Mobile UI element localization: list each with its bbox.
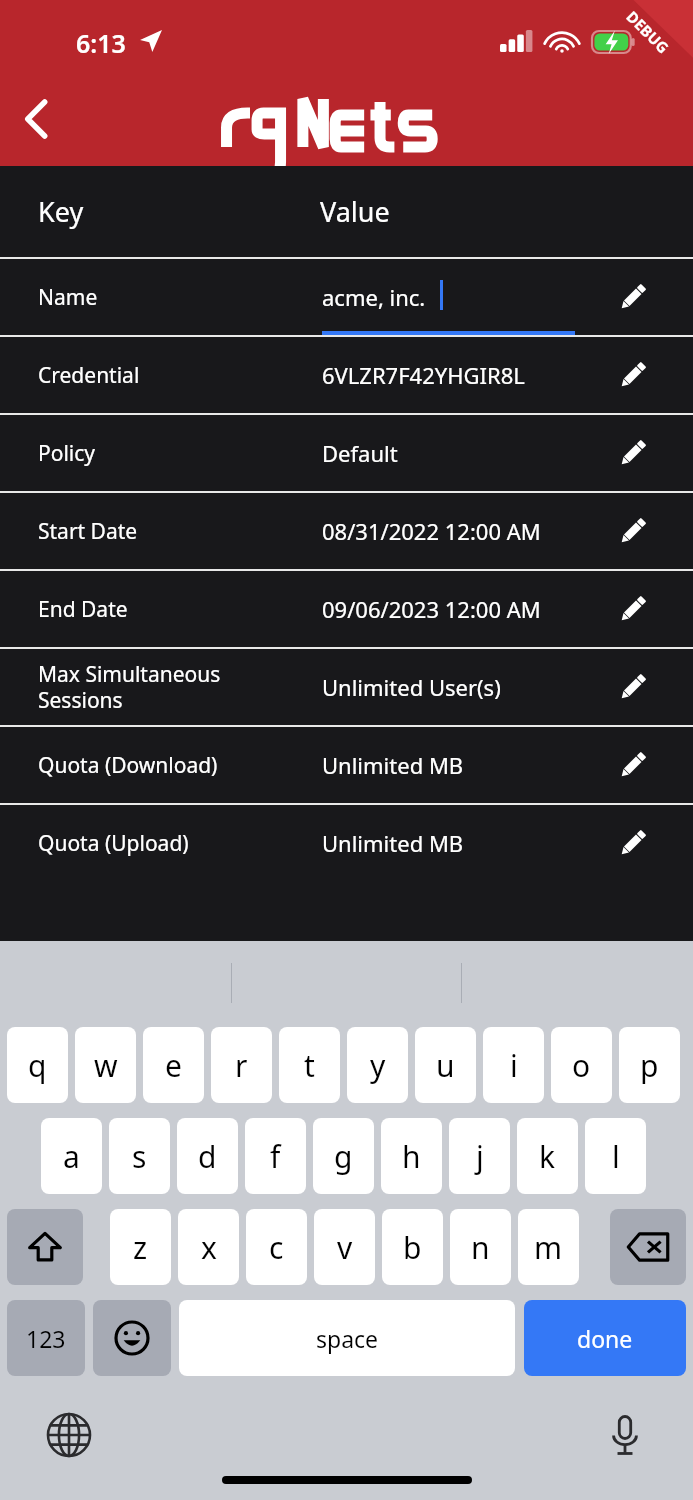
button[interactable]: i bbox=[483, 1027, 544, 1103]
button[interactable]: o bbox=[551, 1027, 612, 1103]
button[interactable]: Dictate bbox=[598, 1408, 652, 1462]
staticText: v bbox=[337, 1227, 353, 1268]
button[interactable]: q bbox=[7, 1027, 68, 1103]
staticText: z bbox=[133, 1227, 148, 1268]
staticText: r bbox=[235, 1045, 248, 1086]
button[interactable]: Quota (Download) bbox=[0, 727, 693, 803]
button[interactable]: Back bbox=[8, 90, 66, 148]
staticText: y bbox=[370, 1045, 386, 1086]
staticText: Unlimited User(s) bbox=[322, 672, 501, 702]
staticText: o bbox=[572, 1045, 591, 1086]
staticText: 6VLZR7F42YHGIR8L bbox=[322, 360, 525, 390]
staticText: f bbox=[270, 1136, 281, 1177]
staticText: d bbox=[198, 1136, 217, 1177]
staticText: p bbox=[640, 1045, 659, 1086]
staticText: Credential bbox=[38, 361, 140, 390]
button[interactable]: Edit Policy bbox=[611, 431, 655, 475]
staticText: k bbox=[539, 1136, 556, 1177]
button[interactable]: t bbox=[279, 1027, 340, 1103]
staticText: done bbox=[577, 1323, 633, 1354]
button[interactable]: j bbox=[449, 1118, 510, 1194]
button[interactable]: e bbox=[143, 1027, 204, 1103]
button[interactable]: l bbox=[585, 1118, 646, 1194]
button[interactable]: Edit Start Date bbox=[611, 509, 655, 553]
button[interactable]: done bbox=[524, 1300, 686, 1376]
staticText: a bbox=[63, 1136, 80, 1177]
staticText: c bbox=[269, 1227, 284, 1268]
staticText: Unlimited MB bbox=[322, 750, 464, 780]
staticText: b bbox=[403, 1227, 422, 1268]
button[interactable]: Name bbox=[0, 259, 693, 335]
button[interactable]: p bbox=[619, 1027, 680, 1103]
button[interactable]: n bbox=[450, 1209, 511, 1285]
staticText: Name bbox=[38, 283, 98, 312]
staticText: acme, inc. bbox=[322, 282, 426, 312]
button[interactable]: Quota (Upload) bbox=[0, 805, 693, 881]
staticText: Quota (Download) bbox=[38, 751, 218, 780]
staticText: Quota (Upload) bbox=[38, 829, 189, 858]
staticText: q bbox=[28, 1045, 47, 1086]
button[interactable]: Edit Quota (Download) bbox=[611, 743, 655, 787]
button[interactable]: End Date bbox=[0, 571, 693, 647]
button[interactable]: m bbox=[518, 1209, 579, 1285]
staticText: w bbox=[94, 1045, 118, 1086]
button[interactable]: f bbox=[245, 1118, 306, 1194]
button[interactable]: Edit Quota (Upload) bbox=[611, 821, 655, 865]
staticText: Value bbox=[320, 193, 390, 230]
button[interactable]: k bbox=[517, 1118, 578, 1194]
button[interactable]: g bbox=[313, 1118, 374, 1194]
staticText: x bbox=[201, 1227, 217, 1268]
button[interactable]: Edit End Date bbox=[611, 587, 655, 631]
button[interactable]: space bbox=[179, 1300, 515, 1376]
staticText: g bbox=[334, 1136, 353, 1177]
button[interactable]: Change keyboard bbox=[42, 1408, 96, 1462]
staticText: Key bbox=[38, 193, 84, 230]
staticText: Start Date bbox=[38, 517, 138, 546]
staticText: Policy bbox=[38, 439, 96, 468]
staticText: j bbox=[476, 1136, 484, 1177]
staticText: DEBUG bbox=[622, 6, 673, 57]
staticText: l bbox=[612, 1136, 620, 1177]
button[interactable]: Credential bbox=[0, 337, 693, 413]
staticText: 09/06/2023 12:00 AM bbox=[322, 594, 541, 624]
button[interactable]: d bbox=[177, 1118, 238, 1194]
staticText: 6:13 bbox=[76, 26, 126, 60]
staticText: u bbox=[436, 1045, 455, 1086]
staticText: Max Simultaneous Sessions bbox=[38, 660, 221, 715]
staticText: 123 bbox=[26, 1323, 66, 1354]
button[interactable]: z bbox=[110, 1209, 171, 1285]
staticText: s bbox=[132, 1136, 147, 1177]
staticText: h bbox=[402, 1136, 421, 1177]
staticText: 08/31/2022 12:00 AM bbox=[322, 516, 541, 546]
button[interactable]: Edit Name bbox=[611, 275, 655, 319]
staticText: n bbox=[471, 1227, 490, 1268]
button[interactable]: c bbox=[246, 1209, 307, 1285]
button[interactable]: w bbox=[75, 1027, 136, 1103]
button[interactable]: r bbox=[211, 1027, 272, 1103]
button[interactable]: s bbox=[109, 1118, 170, 1194]
button[interactable]: 123 bbox=[7, 1300, 85, 1376]
button[interactable]: Edit Credential bbox=[611, 353, 655, 397]
staticText: space bbox=[316, 1323, 379, 1354]
staticText: Default bbox=[322, 438, 398, 468]
button[interactable]: Policy bbox=[0, 415, 693, 491]
button[interactable]: Edit Max Simultaneous Sessions bbox=[611, 665, 655, 709]
button[interactable]: Backspace bbox=[610, 1209, 686, 1285]
button[interactable]: Start Date bbox=[0, 493, 693, 569]
button[interactable]: y bbox=[347, 1027, 408, 1103]
button[interactable]: x bbox=[178, 1209, 239, 1285]
button[interactable]: v bbox=[314, 1209, 375, 1285]
staticText: Unlimited MB bbox=[322, 828, 464, 858]
staticText: End Date bbox=[38, 595, 128, 624]
staticText: m bbox=[534, 1227, 563, 1268]
button[interactable]: a bbox=[41, 1118, 102, 1194]
button[interactable]: b bbox=[382, 1209, 443, 1285]
button[interactable]: h bbox=[381, 1118, 442, 1194]
button[interactable]: u bbox=[415, 1027, 476, 1103]
button[interactable]: Shift bbox=[7, 1209, 83, 1285]
staticText: t bbox=[304, 1045, 315, 1086]
staticText: i bbox=[510, 1045, 518, 1086]
button[interactable]: Max Simultaneous Sessions bbox=[0, 649, 693, 725]
staticText: e bbox=[165, 1045, 182, 1086]
button[interactable]: Emoji bbox=[93, 1300, 171, 1376]
